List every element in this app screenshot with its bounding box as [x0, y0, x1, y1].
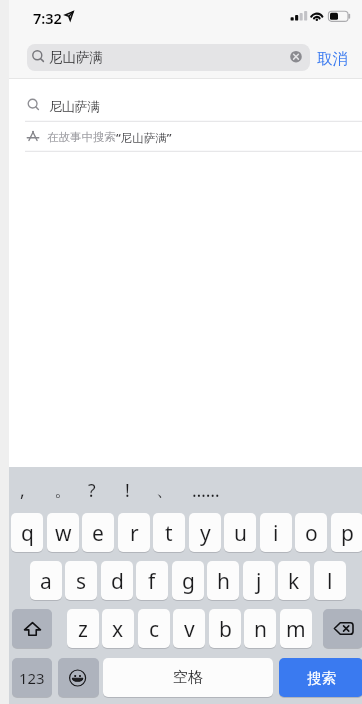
- button[interactable]: 搜索: [279, 658, 362, 697]
- staticText: k: [288, 567, 300, 596]
- button[interactable]: x: [102, 609, 134, 648]
- button[interactable]: o: [295, 513, 327, 552]
- button[interactable]: q: [11, 513, 43, 552]
- staticText: n: [254, 615, 267, 644]
- staticText: d: [111, 567, 124, 596]
- button[interactable]: d: [101, 561, 133, 600]
- button[interactable]: w: [47, 513, 79, 552]
- staticText: j: [256, 567, 262, 596]
- button[interactable]: c: [138, 609, 170, 648]
- staticText: f: [148, 567, 156, 596]
- button[interactable]: Shift: [12, 609, 52, 648]
- button[interactable]: j: [243, 561, 275, 600]
- staticText: !: [125, 478, 130, 502]
- button[interactable]: e: [82, 513, 114, 552]
- staticText: 在故事中搜索: [47, 130, 116, 144]
- staticText: ,: [20, 478, 25, 502]
- button[interactable]: [27, 44, 310, 71]
- staticText: u: [234, 519, 247, 548]
- button[interactable]: t: [153, 513, 185, 552]
- button[interactable]: ……: [189, 477, 223, 503]
- staticText: g: [182, 567, 195, 596]
- staticText: 尼山萨满: [49, 49, 103, 66]
- staticText: ?: [88, 478, 96, 502]
- staticText: x: [112, 615, 124, 644]
- staticText: v: [184, 615, 195, 644]
- staticText: b: [219, 615, 232, 644]
- staticText: a: [40, 567, 52, 596]
- staticText: 取消: [317, 49, 348, 68]
- button[interactable]: f: [136, 561, 168, 600]
- button[interactable]: i: [260, 513, 292, 552]
- staticText: m: [286, 615, 306, 644]
- staticText: y: [200, 519, 211, 548]
- button[interactable]: n: [244, 609, 276, 648]
- button[interactable]: m: [280, 609, 312, 648]
- button[interactable]: Backspace: [323, 609, 362, 648]
- button[interactable]: s: [65, 561, 97, 600]
- button[interactable]: h: [207, 561, 239, 600]
- button[interactable]: z: [67, 609, 99, 648]
- staticText: 、: [156, 479, 174, 501]
- button[interactable]: 取消: [317, 49, 348, 68]
- button[interactable]: ,: [5, 477, 39, 503]
- staticText: h: [217, 567, 230, 596]
- staticText: ……: [192, 478, 220, 502]
- button[interactable]: p: [331, 513, 362, 552]
- button[interactable]: !: [110, 477, 144, 503]
- staticText: 。: [54, 479, 72, 501]
- staticText: q: [21, 519, 34, 548]
- button[interactable]: [9, 91, 362, 121]
- button[interactable]: u: [224, 513, 256, 552]
- staticText: o: [305, 519, 318, 548]
- button[interactable]: 空格: [103, 658, 273, 697]
- button[interactable]: 。: [46, 477, 80, 503]
- staticText: c: [149, 615, 160, 644]
- button[interactable]: l: [314, 561, 346, 600]
- staticText: 空格: [173, 668, 203, 687]
- button[interactable]: b: [209, 609, 241, 648]
- staticText: “尼山萨满”: [116, 130, 172, 146]
- staticText: z: [78, 615, 88, 644]
- button[interactable]: 、: [148, 477, 182, 503]
- staticText: 尼山萨满: [49, 99, 101, 115]
- button[interactable]: r: [118, 513, 150, 552]
- staticText: e: [92, 519, 104, 548]
- staticText: p: [341, 519, 354, 548]
- staticText: 123: [19, 668, 45, 688]
- button[interactable]: Emoji: [58, 658, 99, 697]
- button[interactable]: y: [189, 513, 221, 552]
- button[interactable]: 123: [12, 658, 52, 697]
- staticText: t: [165, 519, 173, 548]
- staticText: 搜索: [307, 669, 336, 687]
- staticText: r: [130, 519, 139, 548]
- button[interactable]: g: [172, 561, 204, 600]
- staticText: l: [327, 567, 333, 596]
- staticText: s: [76, 567, 87, 596]
- button[interactable]: ?: [75, 477, 109, 503]
- button[interactable]: [9, 121, 362, 151]
- staticText: i: [273, 519, 279, 548]
- button[interactable]: k: [278, 561, 310, 600]
- staticText: 7:32: [33, 8, 62, 28]
- button[interactable]: a: [30, 561, 62, 600]
- button[interactable]: v: [173, 609, 205, 648]
- staticText: w: [55, 519, 72, 548]
